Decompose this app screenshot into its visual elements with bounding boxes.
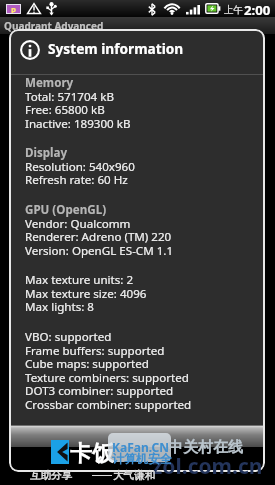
staticText: 计算机安全 — [112, 451, 172, 466]
staticText: 上午 — [224, 4, 243, 16]
staticText: 互助分享 — [30, 469, 72, 482]
staticText: Texture combiners: supported — [25, 370, 189, 386]
staticText: 卡饭 — [70, 440, 114, 468]
staticText: Renderer: Adreno (TM) 220 — [25, 229, 172, 245]
staticText: Inactive: 189300 kB — [25, 116, 131, 132]
staticText: Free: 65800 kB — [25, 102, 105, 118]
staticText: Max texture size: 4096 — [25, 286, 147, 302]
staticText: Cube maps: supported — [25, 356, 149, 372]
button[interactable] — [9, 425, 265, 447]
staticText: 大气谦和 — [113, 469, 155, 482]
staticText: VBO: supported — [25, 329, 112, 345]
staticText: 2:00 — [244, 1, 271, 18]
staticText: Max texture units: 2 — [25, 272, 134, 288]
staticText: Frame buffers: supported — [25, 343, 165, 359]
staticText: P — [11, 5, 16, 13]
staticText: Resolution: 540x960 — [25, 159, 135, 175]
staticText: System information — [48, 39, 184, 58]
staticText: Quadrant Advanced — [4, 19, 104, 33]
staticText: Display — [25, 145, 68, 161]
staticText: Total: 571704 kB — [25, 89, 114, 105]
staticText: Vendor: Qualcomm — [25, 216, 131, 232]
staticText: GPU (OpenGL) — [25, 202, 107, 218]
staticText: Memory — [25, 75, 74, 91]
staticText: Refresh rate: 60 Hz — [25, 172, 128, 188]
staticText: Version: OpenGL ES-CM 1.1 — [25, 243, 174, 259]
staticText: Crossbar combiner: supported — [25, 397, 192, 413]
staticText: 中关村在线 — [168, 438, 243, 457]
staticText: DOT3 combiner: supported — [25, 383, 174, 399]
staticText: KaFan.CN — [112, 439, 169, 455]
staticText: zol.com.cn — [152, 452, 263, 481]
staticText: Max lights: 8 — [25, 299, 94, 315]
